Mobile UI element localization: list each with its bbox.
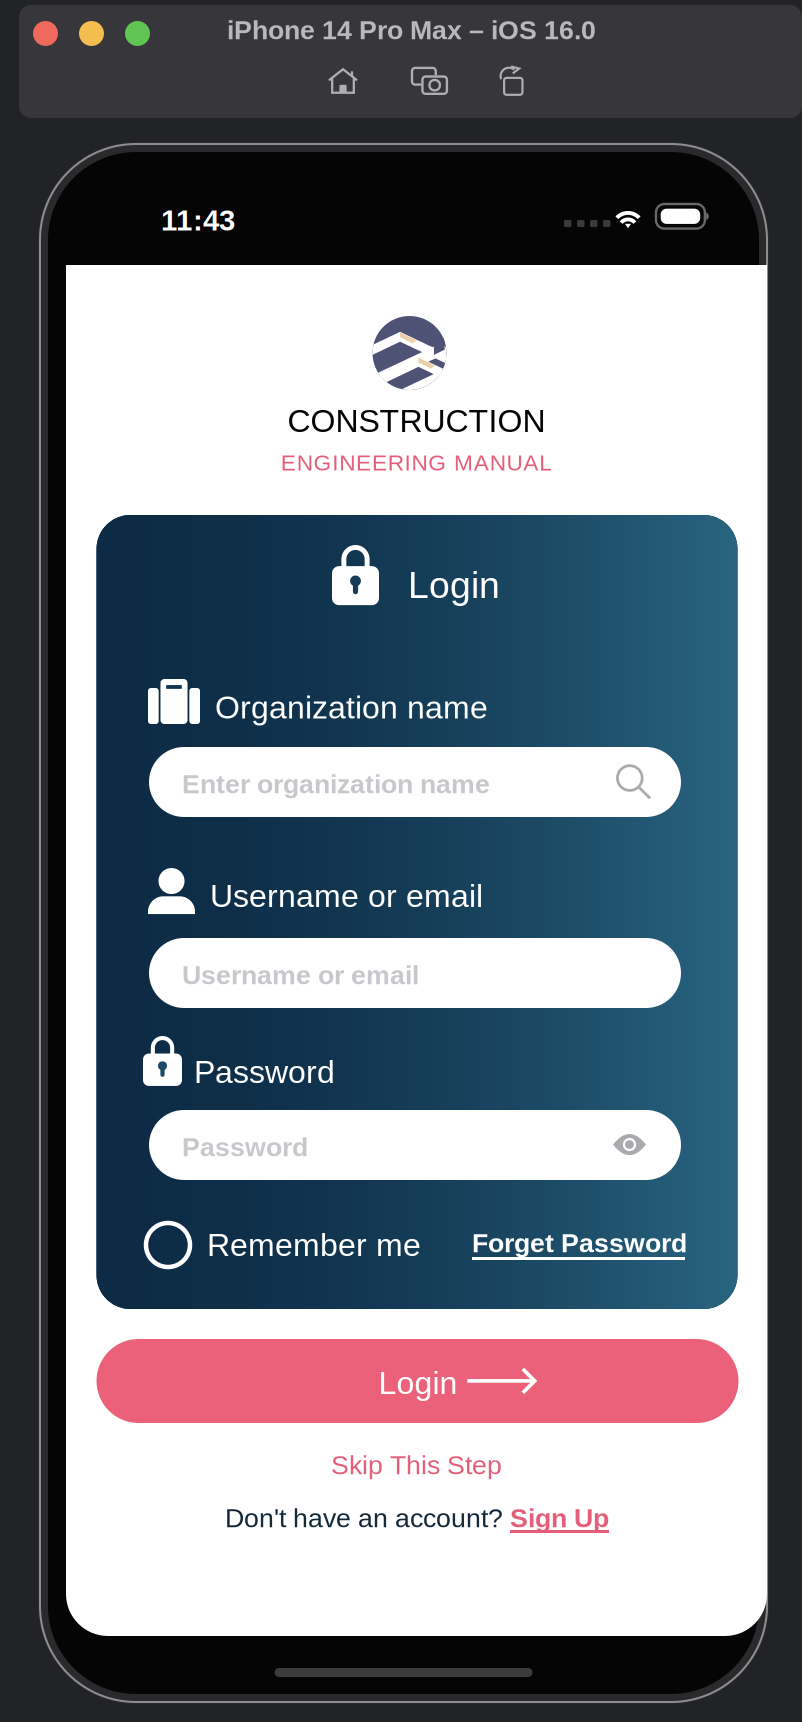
staticText: Username or email	[182, 960, 419, 990]
staticText: Don't have an account?	[225, 1503, 503, 1533]
staticText: Enter organization name	[182, 769, 490, 799]
button[interactable]: Forget Password	[472, 1228, 687, 1260]
staticText: Login	[378, 1365, 457, 1401]
button[interactable]: Login	[332, 545, 500, 605]
staticText: Sign Up	[510, 1503, 609, 1533]
staticText: Organization name	[215, 690, 488, 725]
button[interactable]: Minimise	[79, 21, 104, 46]
staticText: iPhone 14 Pro Max – iOS 16.0	[227, 15, 596, 45]
button[interactable]: Zoom	[125, 21, 150, 46]
button[interactable]: Home	[328, 68, 358, 94]
staticText: Username or email	[210, 878, 483, 914]
button[interactable]: Password	[149, 1110, 681, 1180]
button[interactable]: Sign Up	[510, 1503, 610, 1533]
staticText: Password	[194, 1054, 335, 1090]
button[interactable]: Remember me	[146, 1223, 421, 1267]
staticText: Remember me	[207, 1227, 421, 1263]
button[interactable]: Rotate	[496, 66, 523, 96]
button[interactable]: Username or email	[149, 938, 681, 1008]
staticText: Skip This Step	[331, 1450, 502, 1480]
staticText: ENGINEERING MANUAL	[281, 450, 552, 475]
staticText: Login	[408, 564, 500, 606]
staticText: Password	[182, 1132, 308, 1162]
button[interactable]: Screenshot	[412, 66, 448, 95]
button[interactable]: Close	[33, 21, 58, 46]
staticText: Forget Password	[472, 1228, 687, 1258]
button[interactable]: Skip This Step	[306, 1445, 526, 1485]
button[interactable]: Enter organization name	[149, 747, 681, 817]
staticText: CONSTRUCTION	[287, 403, 545, 439]
staticText: 11:43	[161, 204, 235, 237]
button[interactable]: Login	[96, 1339, 738, 1423]
